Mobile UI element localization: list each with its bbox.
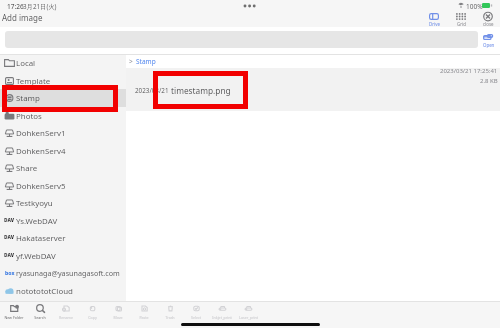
button[interactable]: close — [477, 12, 499, 27]
staticText: Drive — [429, 21, 440, 27]
button[interactable]: Open — [478, 33, 500, 48]
staticText: Move — [113, 315, 123, 320]
staticText: Hakataserver — [16, 233, 66, 244]
button[interactable]: Testkyoyu — [0, 194, 126, 212]
button[interactable]: 2023/03/21 — [126, 68, 500, 111]
staticText: nototototCloud — [16, 286, 73, 297]
button[interactable]: Copy — [79, 305, 105, 320]
button[interactable]: Search — [27, 305, 53, 320]
staticText: Stamp — [16, 93, 40, 104]
button[interactable]: Template — [0, 72, 126, 90]
staticText: DAV — [4, 234, 15, 241]
staticText: yf.WebDAV — [16, 251, 56, 262]
staticText: 2023/03/21 — [135, 86, 169, 95]
staticText: 17:26 — [7, 2, 24, 11]
button[interactable]: Rename — [53, 305, 79, 320]
button[interactable]: Photos — [0, 107, 126, 125]
staticText: box — [5, 269, 15, 276]
staticText: Add image — [2, 12, 43, 23]
staticText: Testkyoyu — [16, 198, 53, 209]
button[interactable]: nototototCloud — [0, 282, 126, 300]
staticText: Template — [16, 76, 51, 87]
button[interactable]: DohkenServ5 — [0, 177, 126, 195]
staticText: Laser_print — [239, 315, 258, 320]
staticText: 2023/03/21 17:25:41 — [440, 67, 498, 75]
staticText: Select — [191, 315, 201, 320]
staticText: Copy — [88, 315, 97, 320]
button[interactable]: Drive — [423, 12, 445, 27]
staticText: timestamp.png — [171, 85, 231, 96]
staticText: > — [129, 57, 133, 66]
button[interactable]: DAV — [0, 247, 126, 265]
button[interactable]: Select — [183, 305, 209, 320]
button[interactable]: Trash — [157, 305, 183, 320]
staticText: DohkenServ1 — [16, 128, 66, 139]
staticText: Ys.WebDAV — [16, 216, 58, 227]
button[interactable]: Grid — [450, 12, 472, 27]
staticText: 2.8 KB — [480, 77, 498, 85]
staticText: Trash — [165, 315, 175, 320]
staticText: close — [483, 21, 494, 27]
button[interactable]: box — [0, 264, 126, 282]
button[interactable]: Paste — [131, 305, 157, 320]
button[interactable]: Local — [0, 54, 126, 72]
staticText: DAV — [4, 217, 15, 224]
staticText: Grid — [457, 21, 466, 27]
button[interactable]: DohkenServ4 — [0, 142, 126, 160]
staticText: Open — [483, 42, 495, 48]
staticText: Local — [16, 58, 36, 69]
staticText: Stamp — [136, 57, 156, 66]
button[interactable]: DAV — [0, 229, 126, 247]
staticText: Share — [16, 163, 38, 174]
staticText: Photos — [16, 111, 42, 122]
button[interactable]: New Folder — [1, 305, 27, 320]
button[interactable]: DohkenServ1 — [0, 124, 126, 142]
staticText: Search — [34, 315, 46, 320]
staticText: Inkjet_print — [212, 315, 232, 320]
button[interactable]: DAV — [0, 212, 126, 230]
staticText: Rename — [59, 315, 73, 320]
staticText: 100% — [466, 2, 483, 11]
staticText: ryasunaga@yasunagasoft.com — [16, 268, 120, 278]
button[interactable]: Inkjet_print — [209, 305, 235, 320]
button[interactable]: Share — [0, 159, 126, 177]
button[interactable]: Laser_print — [235, 305, 261, 320]
staticText: DohkenServ4 — [16, 146, 66, 157]
button[interactable]: Stamp — [0, 89, 126, 107]
button[interactable]: > — [126, 55, 500, 68]
staticText: Paste — [139, 315, 149, 320]
staticText: New Folder — [4, 315, 24, 320]
staticText: DohkenServ5 — [16, 181, 66, 192]
button[interactable]: Move — [105, 305, 131, 320]
staticText: DAV — [4, 252, 15, 259]
staticText: 3月21日(火) — [23, 2, 57, 11]
